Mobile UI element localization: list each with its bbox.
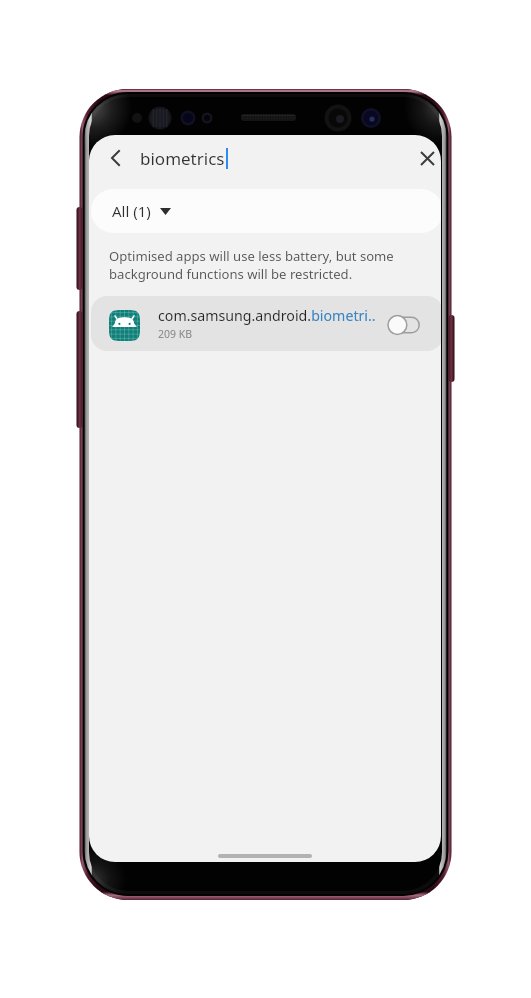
staticText: com.samsung.android.biometri.. [158,306,376,325]
button[interactable]: Toggle optimisation [383,305,425,345]
button[interactable]: All (1) [91,189,441,233]
button[interactable]: Clear search [406,137,441,179]
staticText: 209 KB [158,327,193,341]
staticText: All (1) [112,201,151,221]
staticText: biometrics [140,147,225,170]
button[interactable]: Back [94,137,136,179]
staticText: Optimised apps will use less battery, bu… [109,247,394,283]
button[interactable]: com.samsung.android.biometri.. [91,296,441,351]
